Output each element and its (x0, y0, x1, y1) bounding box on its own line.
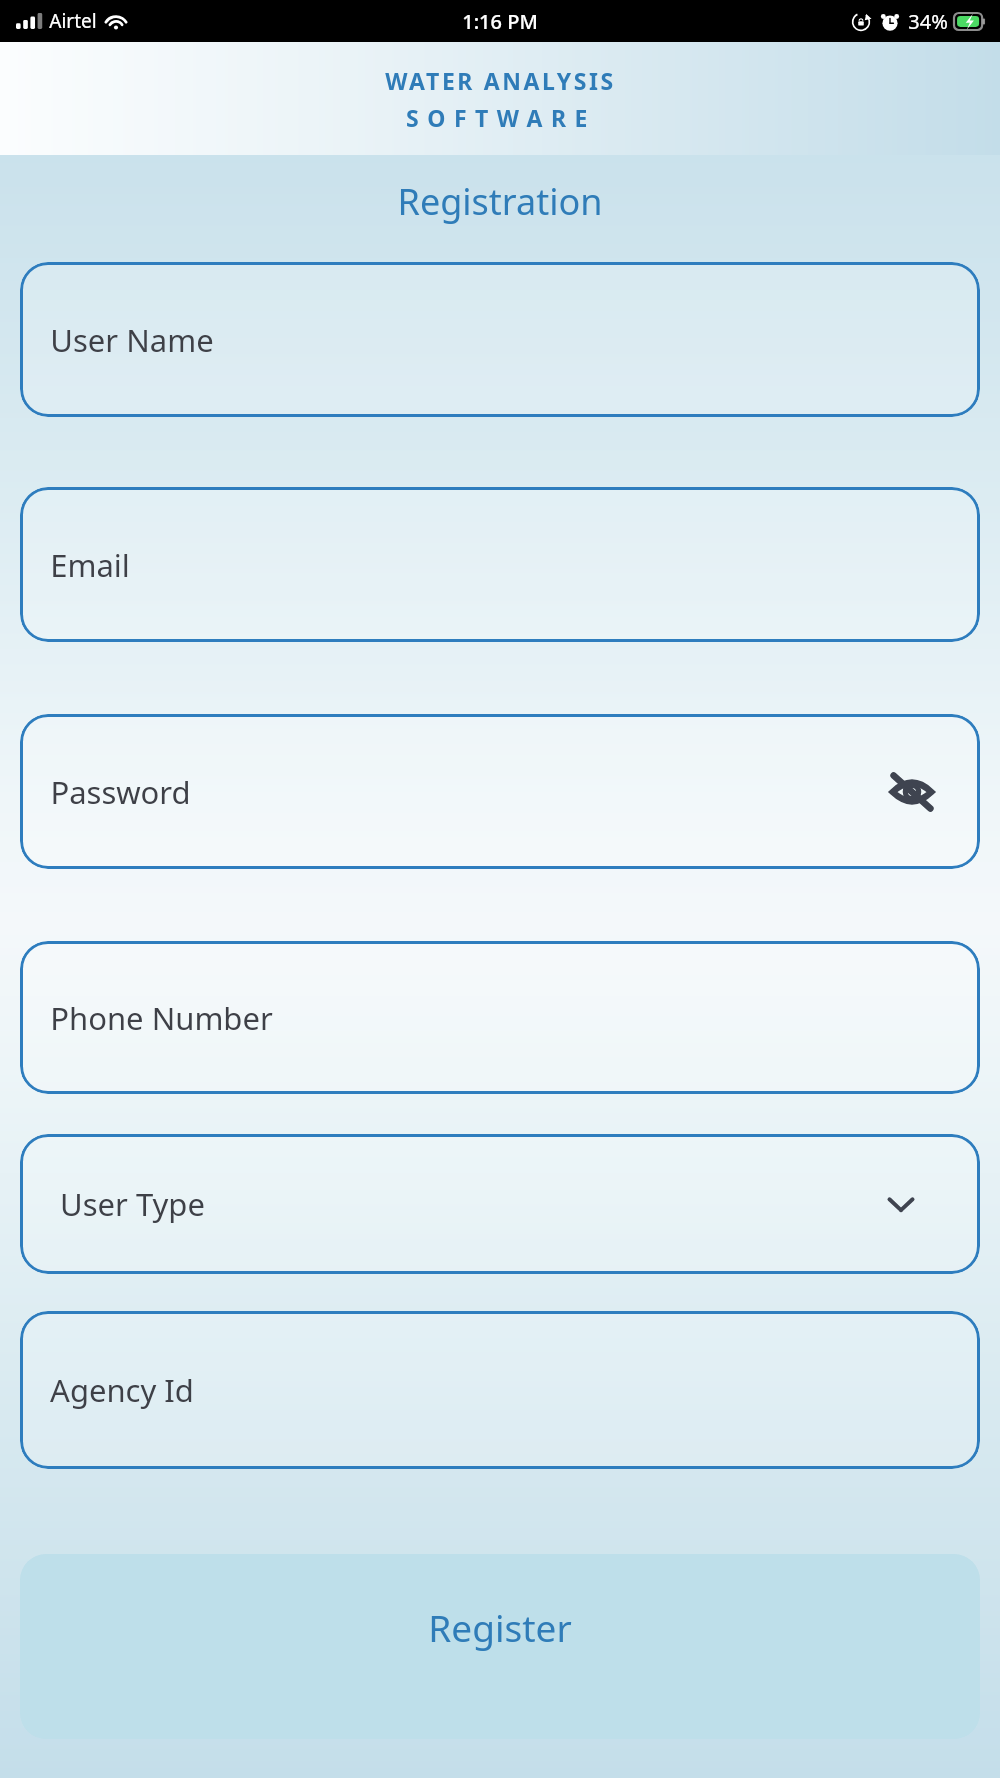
button[interactable]: Agency Id (20, 1311, 980, 1469)
button[interactable]: Register (20, 1554, 980, 1739)
staticText: User Name (50, 319, 214, 361)
staticText: WATER ANALYSIS (385, 65, 616, 96)
staticText: 1:16 PM (462, 8, 538, 35)
button[interactable]: Phone Number (20, 941, 980, 1094)
button[interactable]: Email (20, 487, 980, 642)
button[interactable]: Open user type list (878, 1181, 924, 1227)
staticText: Agency Id (50, 1369, 194, 1411)
staticText: Password (50, 771, 191, 813)
staticText: Email (50, 544, 130, 586)
staticText: Airtel (49, 8, 97, 34)
staticText: Registration (397, 177, 603, 226)
button[interactable]: Password (20, 714, 980, 869)
staticText: User Type (60, 1183, 205, 1225)
staticText: 34% (908, 8, 948, 35)
button[interactable]: User Type (20, 1134, 980, 1274)
staticText: SOFTWARE (406, 102, 596, 133)
button[interactable]: Show password (886, 766, 938, 818)
button[interactable]: User Name (20, 262, 980, 417)
staticText: Register (428, 1602, 572, 1652)
staticText: Phone Number (50, 997, 273, 1039)
